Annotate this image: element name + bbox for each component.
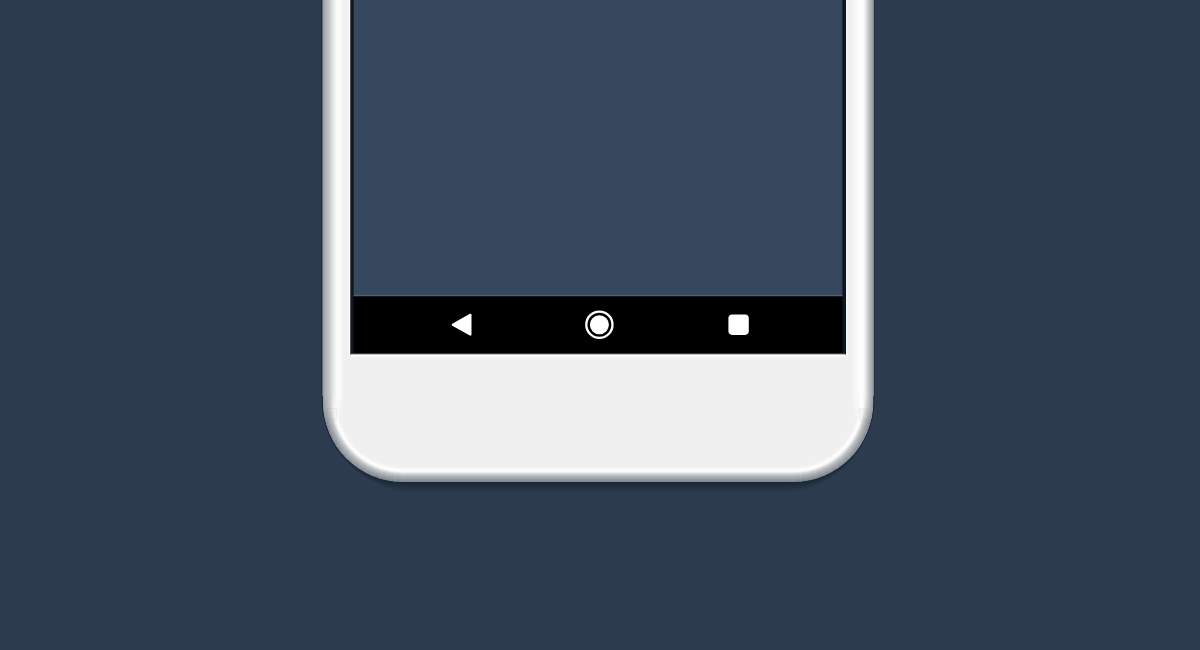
button[interactable]: Back <box>415 296 510 353</box>
button[interactable]: Recent apps <box>691 296 786 353</box>
button[interactable]: Home <box>552 296 647 353</box>
